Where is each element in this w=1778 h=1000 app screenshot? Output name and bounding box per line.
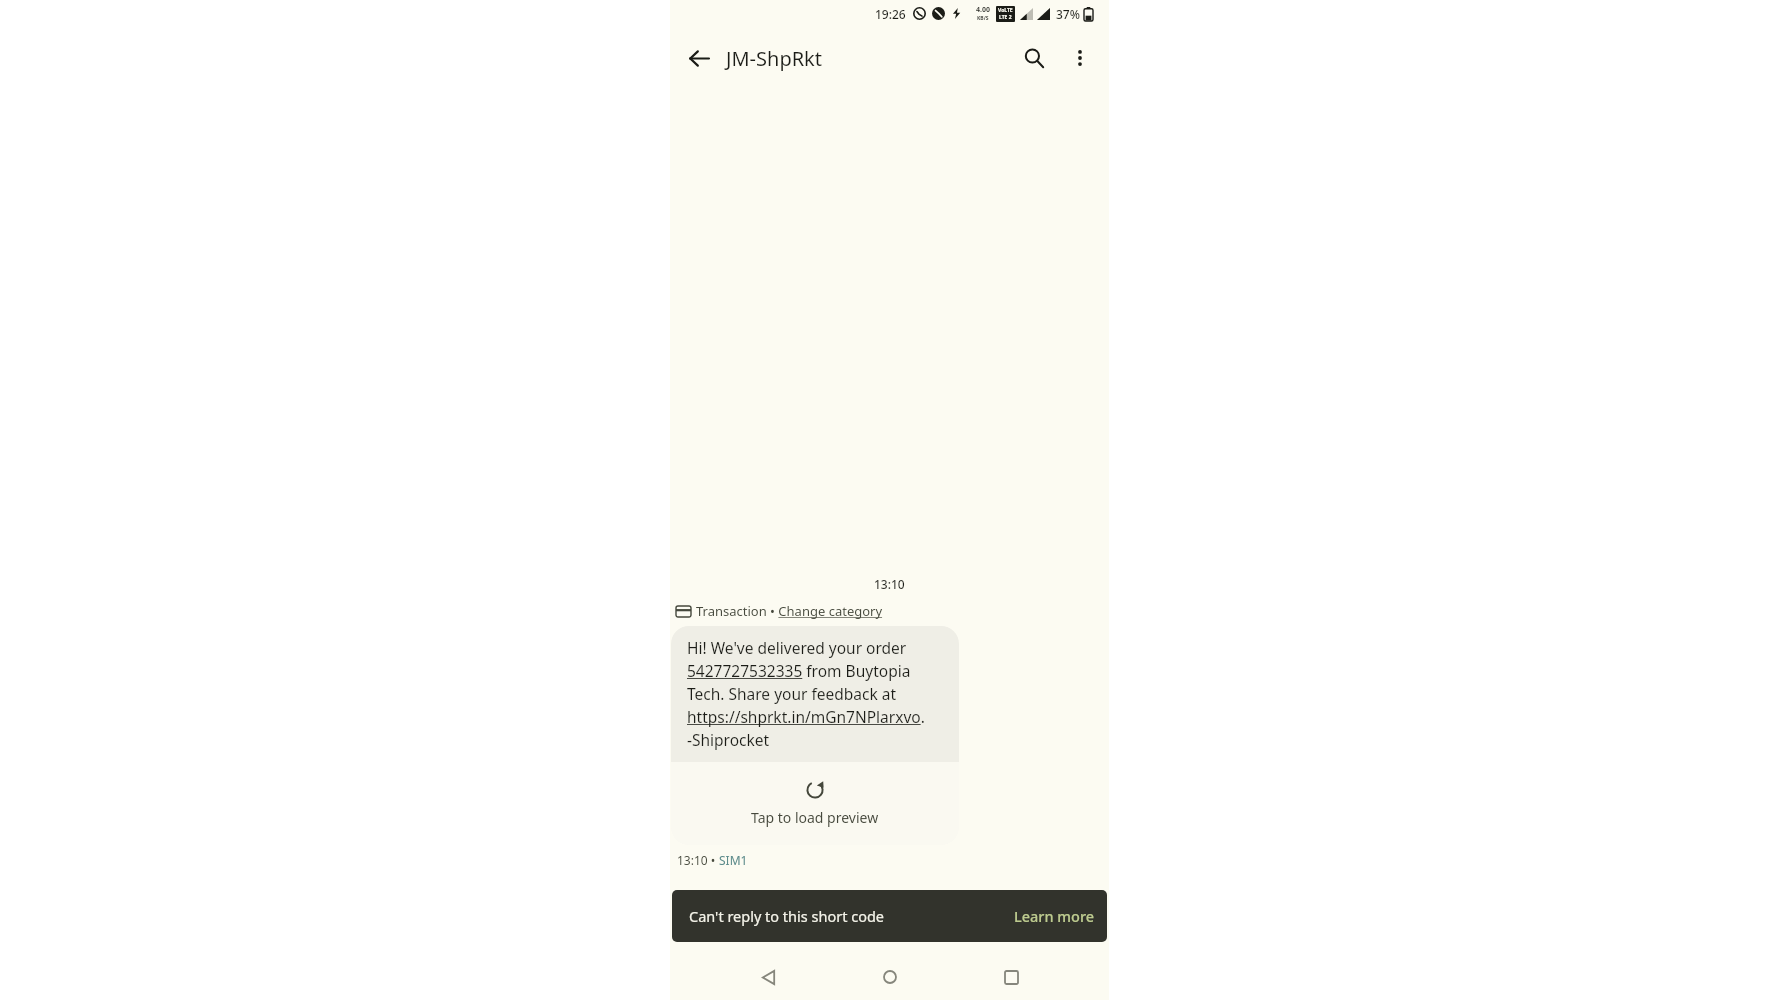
button[interactable]: More options	[1057, 35, 1103, 81]
button[interactable]: Back	[676, 35, 722, 81]
button[interactable]: Transaction • Change category	[696, 602, 883, 620]
button[interactable]: Search	[1011, 35, 1057, 81]
button[interactable]: Hi! We've delivered your order 542772753…	[671, 626, 959, 845]
staticText: Can't reply to this short code	[689, 906, 885, 926]
staticText: VoLTE	[998, 7, 1013, 14]
staticText: 37%	[1056, 6, 1080, 22]
staticText: KB/S	[977, 15, 989, 22]
button[interactable]: Recent apps	[987, 954, 1035, 1000]
staticText: 19:26	[875, 6, 906, 22]
button[interactable]: Home	[866, 954, 914, 1000]
button[interactable]: Learn more	[1002, 900, 1107, 932]
staticText: Hi! We've delivered your order 542772753…	[687, 637, 943, 751]
staticText: Tap to load preview	[751, 808, 879, 827]
staticText: LTE 2	[999, 14, 1012, 21]
staticText: 4.00	[976, 5, 990, 15]
button[interactable]: Back	[744, 954, 792, 1000]
staticText: Learn more	[1014, 906, 1095, 926]
staticText: 13:10	[874, 576, 905, 592]
staticText: 13:10 •	[677, 852, 719, 868]
staticText: JM-ShpRkt	[726, 45, 823, 72]
staticText: SIM1	[719, 852, 748, 868]
